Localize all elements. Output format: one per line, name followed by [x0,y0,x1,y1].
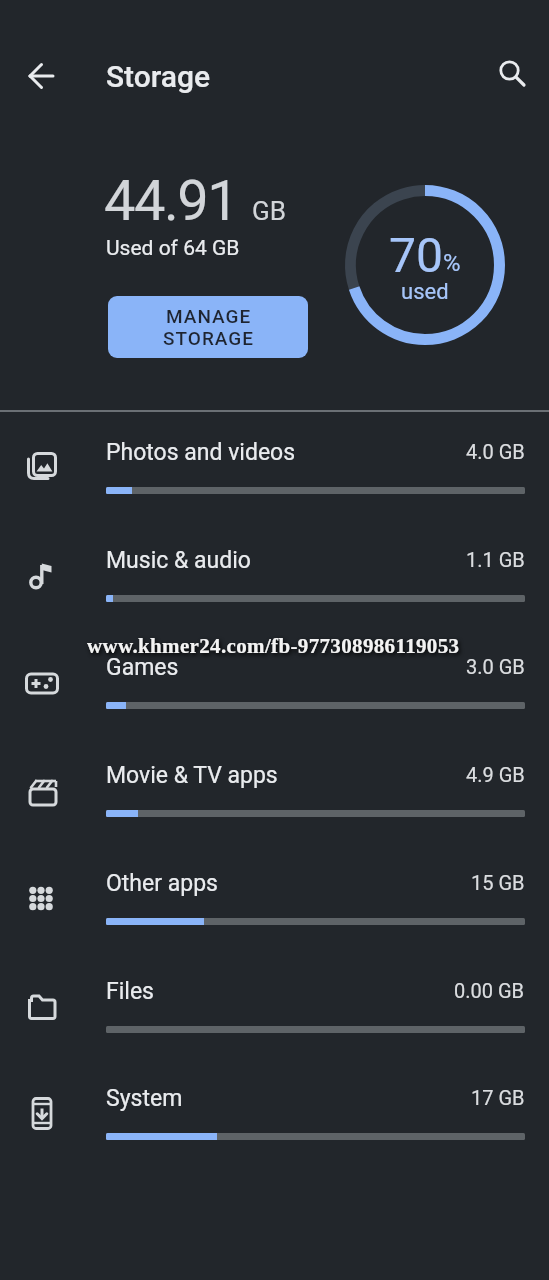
button[interactable]: Games [0,614,549,721]
staticText: 44.91 [104,168,238,234]
staticText: used [401,279,449,305]
staticText: Other apps [106,870,218,897]
button[interactable]: MANAGE [108,296,308,358]
button[interactable]: Other apps [0,830,549,937]
staticText: STORAGE [163,327,254,349]
staticText: 70 [389,227,443,283]
staticText: 4.0 GB [466,440,525,463]
button[interactable]: Photos and videos [0,399,549,506]
staticText: Files [106,978,154,1005]
staticText: Used of 64 GB [106,236,240,261]
button[interactable]: System [0,1045,549,1152]
button[interactable]: Movie & TV apps [0,722,549,829]
staticText: Storage [106,59,211,94]
staticText: 3.0 GB [466,655,525,678]
staticText: 1.1 GB [466,548,525,571]
staticText: System [106,1085,183,1112]
staticText: Games [106,654,179,681]
staticText: % [443,249,461,277]
staticText: MANAGE [166,305,252,327]
staticText: 4.9 GB [466,763,525,786]
button[interactable]: Music & audio [0,507,549,614]
staticText: www.khmer24.com/fb-977308986119053 [87,634,460,657]
staticText: Photos and videos [106,439,296,466]
staticText: 0.00 GB [454,979,525,1002]
staticText: Movie & TV apps [106,762,278,789]
staticText: 17 GB [471,1086,525,1109]
staticText: 15 GB [471,871,525,894]
staticText: GB [252,196,286,226]
button[interactable] [17,52,65,100]
staticText: Music & audio [106,547,251,574]
button[interactable] [488,51,536,99]
button[interactable]: Files [0,938,549,1045]
